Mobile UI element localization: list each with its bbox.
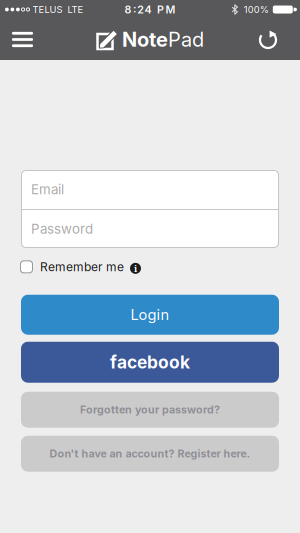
staticText: Login xyxy=(130,306,169,323)
button[interactable]: Password xyxy=(21,210,279,248)
button[interactable]: Menu xyxy=(0,22,33,57)
staticText: Password xyxy=(31,221,93,237)
button[interactable]: Forgotten your password? xyxy=(21,392,279,428)
staticText: NotePad xyxy=(122,28,204,51)
staticText: facebook xyxy=(110,352,190,372)
staticText: Forgotten your password? xyxy=(80,403,220,416)
button[interactable]: Refresh xyxy=(259,20,300,58)
staticText: TELUS xyxy=(33,4,63,15)
button[interactable]: Remember me xyxy=(20,260,124,274)
staticText: Remember me xyxy=(40,260,124,274)
button[interactable]: Don't have an account? Register here. xyxy=(21,436,279,472)
staticText: 8:24 PM xyxy=(125,3,175,16)
staticText: LTE xyxy=(68,4,84,15)
button[interactable]: Email xyxy=(21,170,279,209)
button[interactable]: Login xyxy=(21,295,279,335)
staticText: Email xyxy=(31,182,64,197)
button[interactable]: facebook xyxy=(21,342,279,383)
staticText: i xyxy=(134,262,137,275)
staticText: Don't have an account? Register here. xyxy=(49,447,250,460)
staticText: 100% xyxy=(244,4,269,15)
button[interactable]: Info xyxy=(124,259,141,275)
